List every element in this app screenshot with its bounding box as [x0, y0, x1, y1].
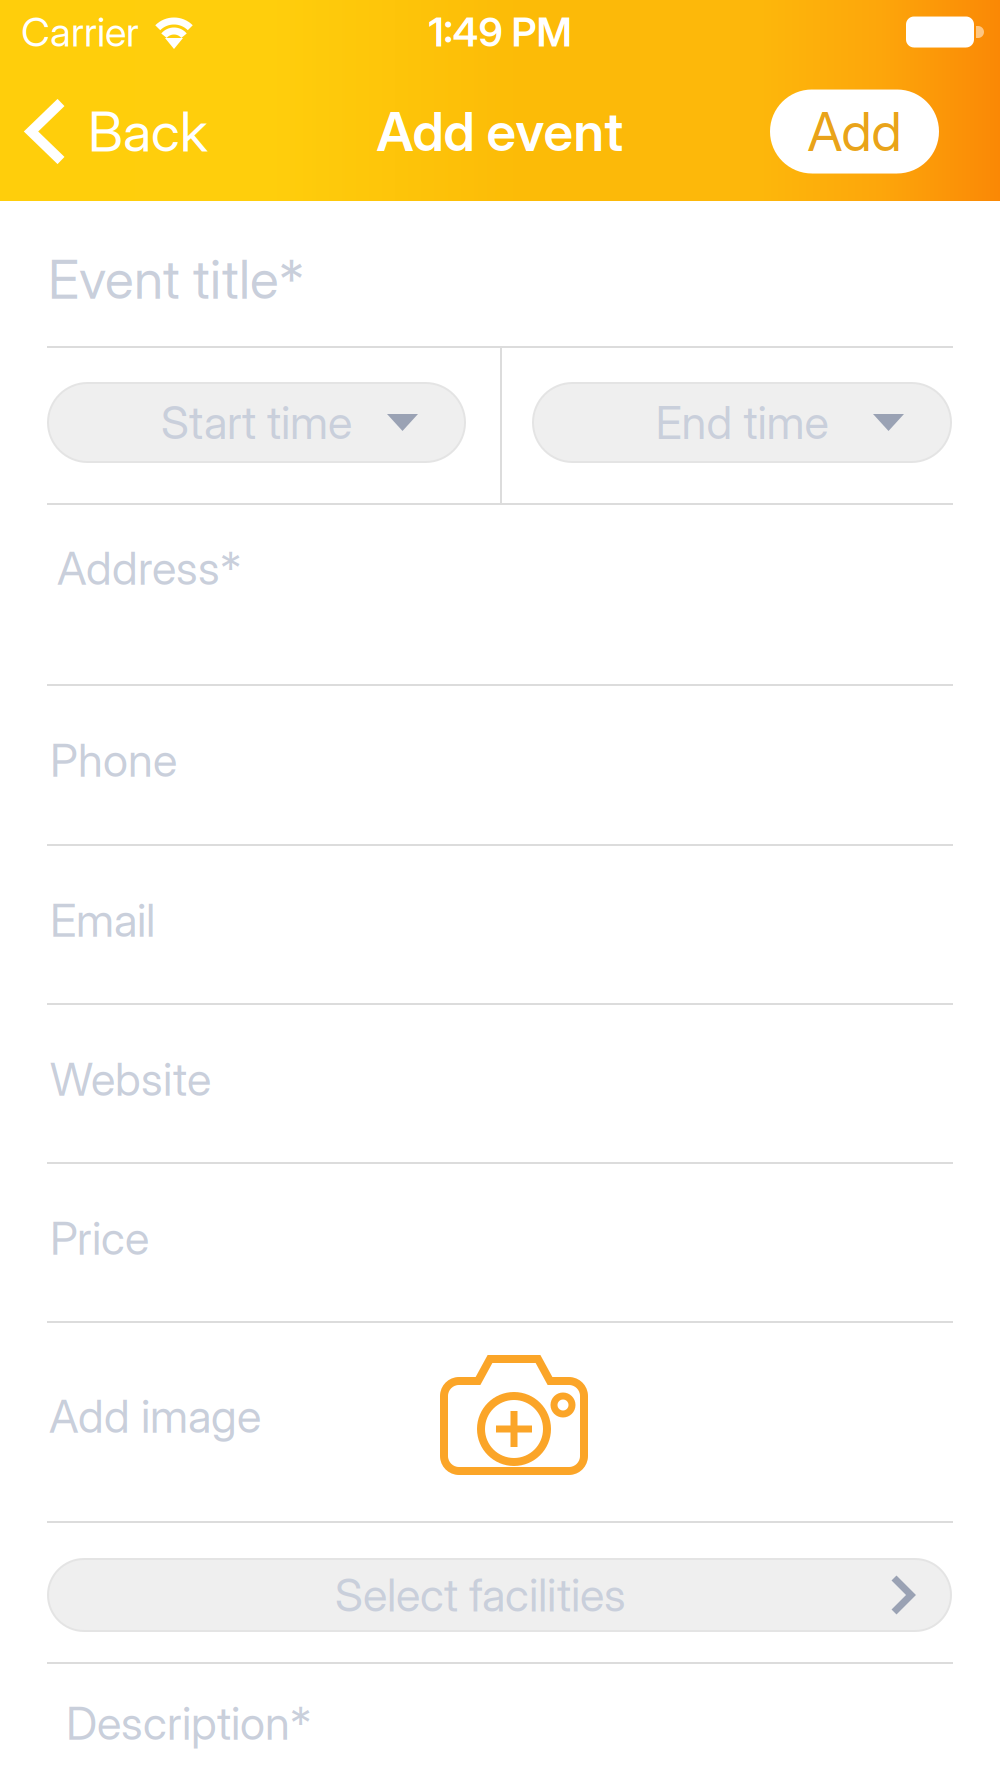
staticText: Email	[50, 893, 155, 948]
staticText: Add image	[49, 1389, 261, 1444]
staticText: 1:49 PM	[428, 8, 571, 56]
staticText: Price	[50, 1211, 149, 1266]
button[interactable]: End time	[533, 383, 951, 462]
button[interactable]: Back	[0, 65, 290, 197]
staticText: Address*	[57, 541, 241, 596]
staticText: Phone	[50, 733, 177, 788]
button[interactable]: Select facilities	[48, 1559, 951, 1631]
staticText: Description*	[66, 1696, 311, 1751]
staticText: Website	[50, 1052, 211, 1107]
staticText: Event title*	[48, 247, 304, 311]
staticText: Add event	[376, 99, 623, 164]
button[interactable]: Add image	[440, 1355, 588, 1475]
staticText: End time	[655, 395, 828, 450]
staticText: Select facilities	[335, 1568, 626, 1622]
staticText: Back	[88, 98, 208, 164]
staticText: Add	[807, 99, 901, 164]
button[interactable]: Add	[770, 89, 939, 173]
staticText: Carrier	[21, 8, 139, 56]
button[interactable]: Start time	[48, 383, 465, 462]
staticText: Start time	[161, 395, 352, 450]
